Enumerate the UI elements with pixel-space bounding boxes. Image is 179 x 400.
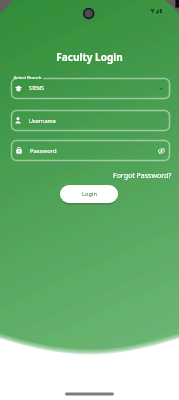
button[interactable]: STEMS bbox=[11, 78, 170, 99]
button[interactable]: Username bbox=[11, 110, 170, 131]
staticText: Select Branch bbox=[14, 74, 42, 80]
button[interactable]: Show password bbox=[157, 147, 166, 155]
button[interactable]: Password bbox=[11, 140, 170, 161]
staticText: Login bbox=[82, 190, 97, 198]
button[interactable]: Login bbox=[60, 185, 118, 203]
staticText: Faculty Login bbox=[0, 50, 179, 64]
button[interactable]: Forgot Password? bbox=[112, 169, 173, 183]
staticText: Password bbox=[30, 147, 57, 155]
staticText: STEMS bbox=[29, 85, 44, 92]
staticText: Forgot Password? bbox=[113, 171, 172, 181]
staticText: Username bbox=[29, 117, 56, 124]
